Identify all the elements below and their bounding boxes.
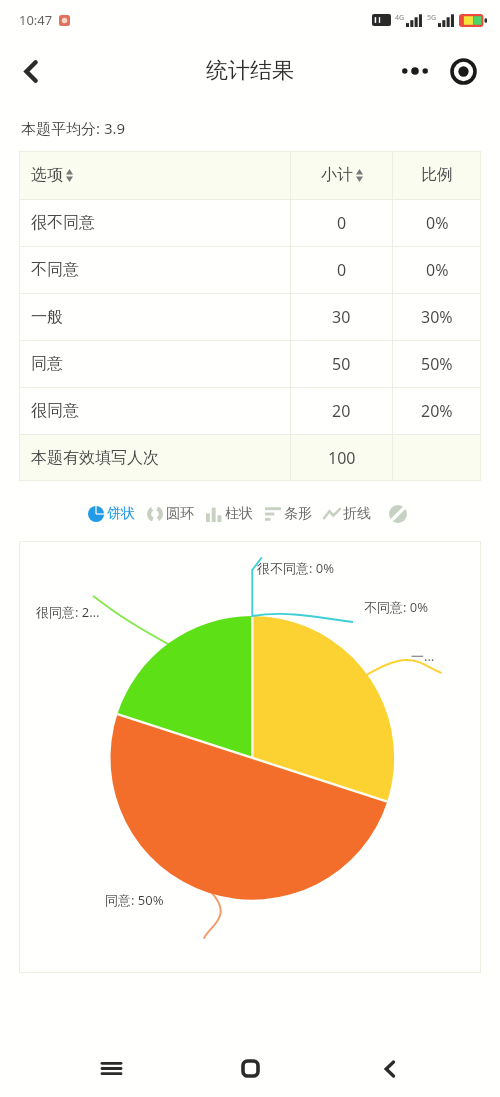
button[interactable]: No chart — [377, 497, 419, 531]
staticText: 20% — [421, 400, 453, 422]
button[interactable]: Record — [440, 48, 486, 94]
staticText: 条形 — [284, 505, 312, 523]
staticText: 比例 — [421, 165, 453, 185]
staticText: 一… — [411, 647, 435, 665]
staticText: 30 — [332, 306, 351, 328]
button[interactable]: Recent apps — [82, 1040, 140, 1097]
staticText: 很同意: 2… — [36, 603, 100, 621]
staticText: 饼状 — [107, 505, 135, 523]
staticText: 20 — [332, 400, 351, 422]
staticText: 不同意: 0% — [364, 598, 429, 616]
button[interactable]: More options — [392, 48, 438, 94]
button[interactable]: 折线 — [318, 497, 377, 531]
staticText: 100 — [328, 447, 356, 469]
staticText: 柱状 — [225, 505, 253, 523]
button[interactable]: 饼状 — [82, 497, 141, 531]
staticText: 10:47 — [19, 11, 53, 29]
staticText: 50% — [421, 353, 453, 375]
button[interactable]: Home — [221, 1040, 279, 1097]
staticText: 0% — [426, 259, 449, 281]
staticText: 统计结果 — [206, 57, 294, 85]
staticText: 小计 — [321, 165, 353, 185]
staticText: 0 — [337, 212, 347, 234]
button[interactable]: Back — [361, 1040, 419, 1097]
staticText: 0 — [337, 259, 347, 281]
staticText: 一般 — [31, 307, 63, 327]
staticText: 50 — [332, 353, 351, 375]
button[interactable]: Back — [6, 46, 56, 96]
staticText: 0% — [426, 212, 449, 234]
staticText: 不同意 — [31, 260, 79, 280]
staticText: 圆环 — [166, 505, 194, 523]
staticText: 4G — [395, 13, 405, 23]
staticText: 本题有效填写人次 — [31, 448, 159, 468]
staticText: 很不同意: 0% — [257, 559, 335, 577]
staticText: 30% — [421, 306, 453, 328]
staticText: 很不同意 — [31, 213, 95, 233]
staticText: 很同意 — [31, 401, 79, 421]
button[interactable]: 圆环 — [141, 497, 200, 531]
staticText: 同意: 50% — [105, 891, 164, 909]
staticText: 本题平均分: 3.9 — [21, 118, 126, 138]
staticText: 5G — [427, 13, 437, 23]
staticText: 折线 — [343, 505, 371, 523]
button[interactable]: 柱状 — [200, 497, 259, 531]
button[interactable]: 条形 — [259, 497, 318, 531]
staticText: 同意 — [31, 354, 63, 374]
staticText: 选项 — [31, 165, 63, 185]
